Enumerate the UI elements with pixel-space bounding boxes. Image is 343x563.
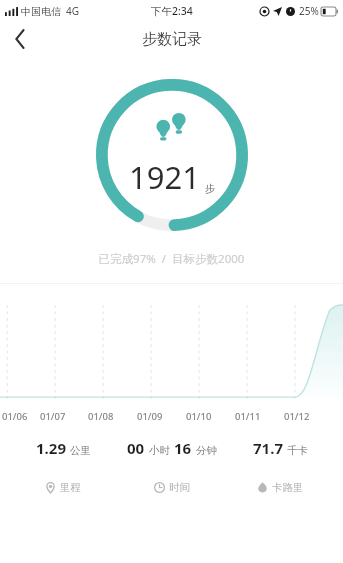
staticText: 分钟	[196, 444, 217, 457]
staticText: 16	[174, 438, 192, 458]
button[interactable]: 时间	[150, 479, 194, 496]
staticText: 里程	[60, 481, 81, 494]
staticText: 已完成97% / 目标步数2000	[0, 251, 343, 267]
button[interactable]: Back	[0, 22, 40, 56]
staticText: 步数记录	[142, 30, 202, 49]
staticText: 01/12	[284, 410, 310, 423]
button[interactable]: 里程	[41, 479, 85, 496]
staticText: 01/09	[137, 410, 163, 423]
button[interactable]: 卡路里	[253, 479, 308, 496]
staticText: 中国电信	[21, 5, 61, 18]
staticText: 步	[205, 182, 215, 195]
staticText: 01/07	[40, 410, 66, 423]
staticText: 公里	[70, 444, 91, 457]
staticText: 小时	[149, 444, 170, 457]
staticText: 00	[127, 438, 145, 458]
staticText: 01/11	[235, 410, 261, 423]
staticText: 01/06	[2, 410, 28, 423]
staticText: 4G	[66, 4, 79, 18]
staticText: 01/08	[88, 410, 114, 423]
staticText: 01/10	[186, 410, 212, 423]
staticText: 1.29	[36, 438, 66, 458]
staticText: 千卡	[287, 444, 308, 457]
staticText: 下午2:34	[151, 4, 193, 18]
staticText: 71.7	[253, 438, 283, 458]
staticText: 25%	[299, 4, 319, 18]
staticText: 卡路里	[272, 481, 304, 494]
staticText: 时间	[169, 481, 190, 494]
staticText: 1921	[129, 156, 200, 198]
